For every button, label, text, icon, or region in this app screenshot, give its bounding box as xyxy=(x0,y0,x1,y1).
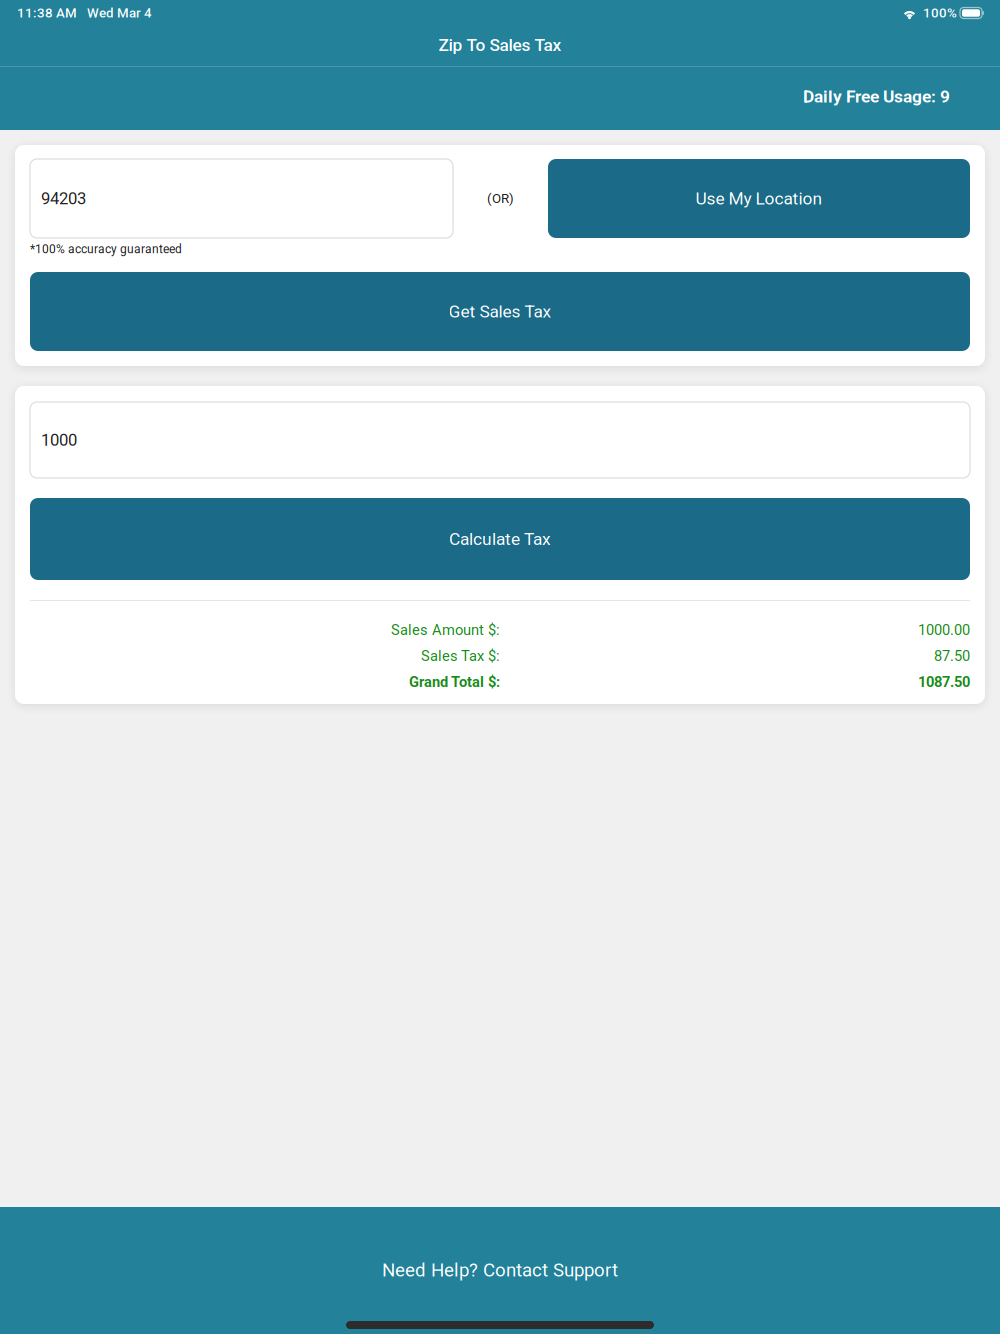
staticText: Use My Location xyxy=(695,188,822,209)
staticText: 87.50 xyxy=(934,647,970,665)
staticText: 1000.00 xyxy=(918,621,970,639)
staticText: 1087.50 xyxy=(918,673,970,691)
staticText: 11:38 AM xyxy=(17,5,77,21)
staticText: Sales Tax $: xyxy=(421,647,500,665)
staticText: (OR) xyxy=(487,191,514,206)
staticText: 1000 xyxy=(41,430,77,450)
staticText: Grand Total $: xyxy=(409,673,500,691)
staticText: 94203 xyxy=(41,189,86,208)
staticText: Zip To Sales Tax xyxy=(438,35,561,55)
button[interactable]: Sales amount xyxy=(30,402,970,478)
staticText: Wed Mar 4 xyxy=(87,5,152,21)
staticText: Need Help? Contact Support xyxy=(382,1259,618,1281)
staticText: *100% accuracy guaranteed xyxy=(30,242,182,256)
staticText: Get Sales Tax xyxy=(448,301,551,322)
button[interactable]: Need Help? Contact Support xyxy=(0,1243,1000,1297)
staticText: Calculate Tax xyxy=(449,529,551,549)
button[interactable]: Use My Location xyxy=(548,159,970,238)
staticText: 100% xyxy=(923,5,957,21)
staticText: Daily Free Usage: 9 xyxy=(803,86,950,107)
staticText: Sales Amount $: xyxy=(391,621,500,639)
button[interactable]: Zip code xyxy=(30,159,453,238)
button[interactable]: Calculate Tax xyxy=(30,498,970,580)
button[interactable]: Get Sales Tax xyxy=(30,272,970,351)
